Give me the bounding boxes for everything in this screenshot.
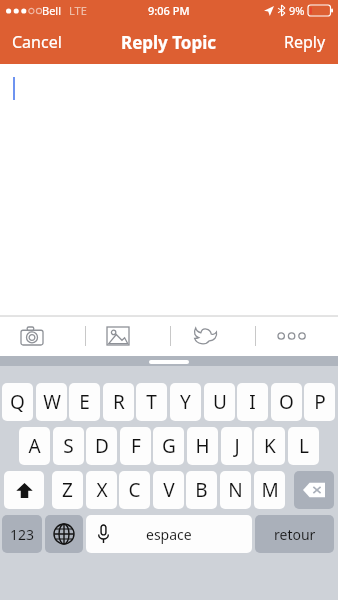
button[interactable]: Backspace [294, 471, 334, 509]
button[interactable]: P [304, 383, 335, 421]
button[interactable]: C [119, 471, 150, 509]
staticText: K [264, 433, 276, 459]
button[interactable]: Shift [4, 471, 44, 509]
staticText: J [234, 433, 240, 459]
button[interactable]: Reply [272, 21, 338, 63]
button[interactable]: J [221, 427, 252, 465]
staticText: W [43, 389, 61, 415]
staticText: Reply [284, 31, 326, 53]
staticText: B [195, 477, 208, 503]
button[interactable]: Y [170, 383, 201, 421]
staticText: C [128, 477, 141, 503]
staticText: I [249, 389, 256, 415]
staticText: Reply Topic [121, 31, 217, 54]
staticText: 123 [10, 525, 35, 544]
button[interactable]: I [237, 383, 268, 421]
staticText: D [95, 433, 109, 459]
staticText: H [195, 433, 210, 459]
button[interactable]: Change keyboard [45, 515, 83, 553]
staticText: F [131, 433, 141, 459]
button[interactable]: Cancel [0, 21, 74, 63]
button[interactable]: N [220, 471, 251, 509]
button[interactable]: 123 [2, 515, 42, 553]
staticText: Q [10, 389, 25, 415]
button[interactable]: F [120, 427, 151, 465]
button[interactable]: X [86, 471, 117, 509]
staticText: O [279, 389, 294, 415]
staticText: 9:06 PM [148, 3, 190, 18]
staticText: R [113, 389, 125, 415]
button[interactable]: W [36, 383, 67, 421]
button[interactable]: U [204, 383, 235, 421]
button[interactable]: R [103, 383, 134, 421]
button[interactable]: D [86, 427, 117, 465]
staticText: Z [62, 477, 73, 503]
button[interactable]: Camera [21, 327, 43, 345]
staticText: T [146, 389, 157, 415]
staticText: S [63, 433, 74, 459]
button[interactable]: L [288, 427, 319, 465]
staticText: X [96, 477, 108, 503]
button[interactable]: H [187, 427, 218, 465]
staticText: LTE [69, 3, 87, 18]
button[interactable]: Q [2, 383, 33, 421]
staticText: P [314, 389, 326, 415]
staticText: E [79, 389, 90, 415]
staticText: espace [146, 525, 192, 544]
staticText: Cancel [12, 31, 62, 53]
button[interactable]: A [19, 427, 50, 465]
button[interactable]: G [153, 427, 184, 465]
button[interactable]: B [186, 471, 217, 509]
button[interactable]: espace [86, 515, 252, 553]
staticText: L [299, 433, 309, 459]
staticText: V [163, 477, 175, 503]
button[interactable]: V [153, 471, 184, 509]
button[interactable]: M [254, 471, 285, 509]
staticText: N [228, 477, 243, 503]
button[interactable]: K [254, 427, 285, 465]
button[interactable]: retour [255, 515, 334, 553]
button[interactable]: Bird [192, 326, 218, 346]
button[interactable]: Z [52, 471, 83, 509]
button[interactable]: S [53, 427, 84, 465]
button[interactable]: E [69, 383, 100, 421]
staticText: G [162, 433, 176, 459]
button[interactable] [149, 360, 189, 364]
staticText: A [28, 433, 41, 459]
button[interactable]: O [271, 383, 302, 421]
staticText: M [261, 477, 279, 503]
button[interactable]: T [136, 383, 167, 421]
staticText: retour [274, 525, 316, 544]
staticText: U [213, 389, 227, 415]
staticText: Bell [42, 3, 62, 18]
staticText: Y [180, 389, 191, 415]
staticText: 9% [289, 3, 305, 18]
button[interactable]: More [278, 328, 306, 344]
button[interactable]: Photo [107, 327, 129, 345]
